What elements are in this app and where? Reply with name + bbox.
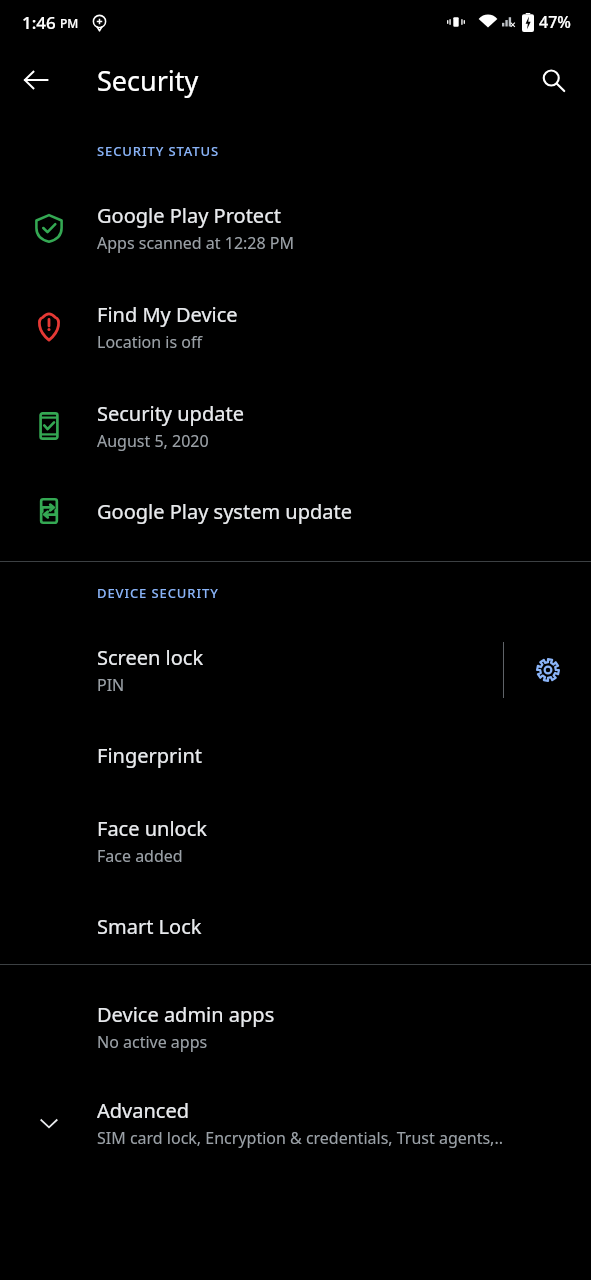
button[interactable]: Search <box>525 52 581 108</box>
button[interactable]: Back <box>8 52 64 108</box>
staticText: 47% <box>539 11 571 33</box>
staticText: Google Play Protect <box>97 202 281 229</box>
staticText: PIN <box>97 674 125 696</box>
staticText: SECURITY STATUS <box>97 142 220 160</box>
button[interactable]: Screen lock <box>0 620 503 719</box>
staticText: Apps scanned at 12:28 PM <box>97 232 295 254</box>
staticText: Device admin apps <box>97 1001 275 1028</box>
staticText: No active apps <box>97 1031 208 1053</box>
button[interactable]: Google Play system update <box>0 475 591 547</box>
button[interactable]: Find My Device <box>0 277 591 376</box>
staticText: PM <box>60 15 79 31</box>
staticText: Security update <box>97 400 244 427</box>
button[interactable]: Smart Lock <box>0 890 591 962</box>
staticText: Smart Lock <box>97 913 202 940</box>
staticText: Location is off <box>97 331 202 353</box>
staticText: Google Play system update <box>97 498 353 525</box>
button[interactable]: Device admin apps <box>0 979 591 1075</box>
staticText: Fingerprint <box>97 742 203 769</box>
button[interactable]: Security update <box>0 376 591 475</box>
button[interactable]: Google Play Protect <box>0 178 591 277</box>
staticText: Advanced <box>97 1097 189 1124</box>
button[interactable]: Advanced <box>0 1075 591 1171</box>
button[interactable]: Fingerprint <box>0 719 591 791</box>
staticText: DEVICE SECURITY <box>97 584 219 602</box>
button[interactable]: Screen lock settings <box>504 620 591 719</box>
staticText: Screen lock <box>97 644 204 671</box>
button[interactable]: Face unlock <box>0 791 591 890</box>
staticText: Face unlock <box>97 815 207 842</box>
staticText: August 5, 2020 <box>97 430 209 452</box>
staticText: Security <box>97 62 199 99</box>
staticText: Find My Device <box>97 301 238 328</box>
staticText: Face added <box>97 845 183 867</box>
staticText: SIM card lock, Encryption & credentials,… <box>97 1127 503 1149</box>
staticText: 1:46 <box>22 11 56 34</box>
